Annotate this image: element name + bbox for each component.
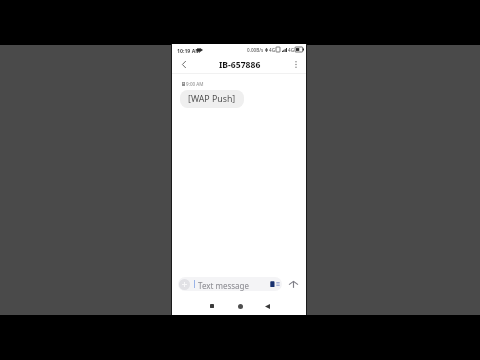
button[interactable]: [WAP Push] [180,90,244,108]
button[interactable]: Add attachment [178,277,282,291]
staticText: 4G [288,47,294,52]
staticText: Text message [198,280,250,291]
button[interactable]: Home [233,299,247,313]
staticText: 4G [269,47,275,52]
staticText: 10:19 AM [177,47,201,54]
staticText: [WAP Push] [188,93,236,105]
button[interactable]: More options [288,56,304,72]
button[interactable]: Add attachment [179,279,190,290]
button[interactable]: Back [176,56,192,72]
staticText: 9:00 AM [186,81,204,87]
button[interactable]: Subscription [268,279,280,289]
staticText: 0.00B/s [247,47,264,52]
button[interactable]: Recent apps [205,299,219,313]
button[interactable]: Send [285,276,301,292]
staticText: IB-657886 [219,59,261,71]
button[interactable]: Back [260,299,274,313]
